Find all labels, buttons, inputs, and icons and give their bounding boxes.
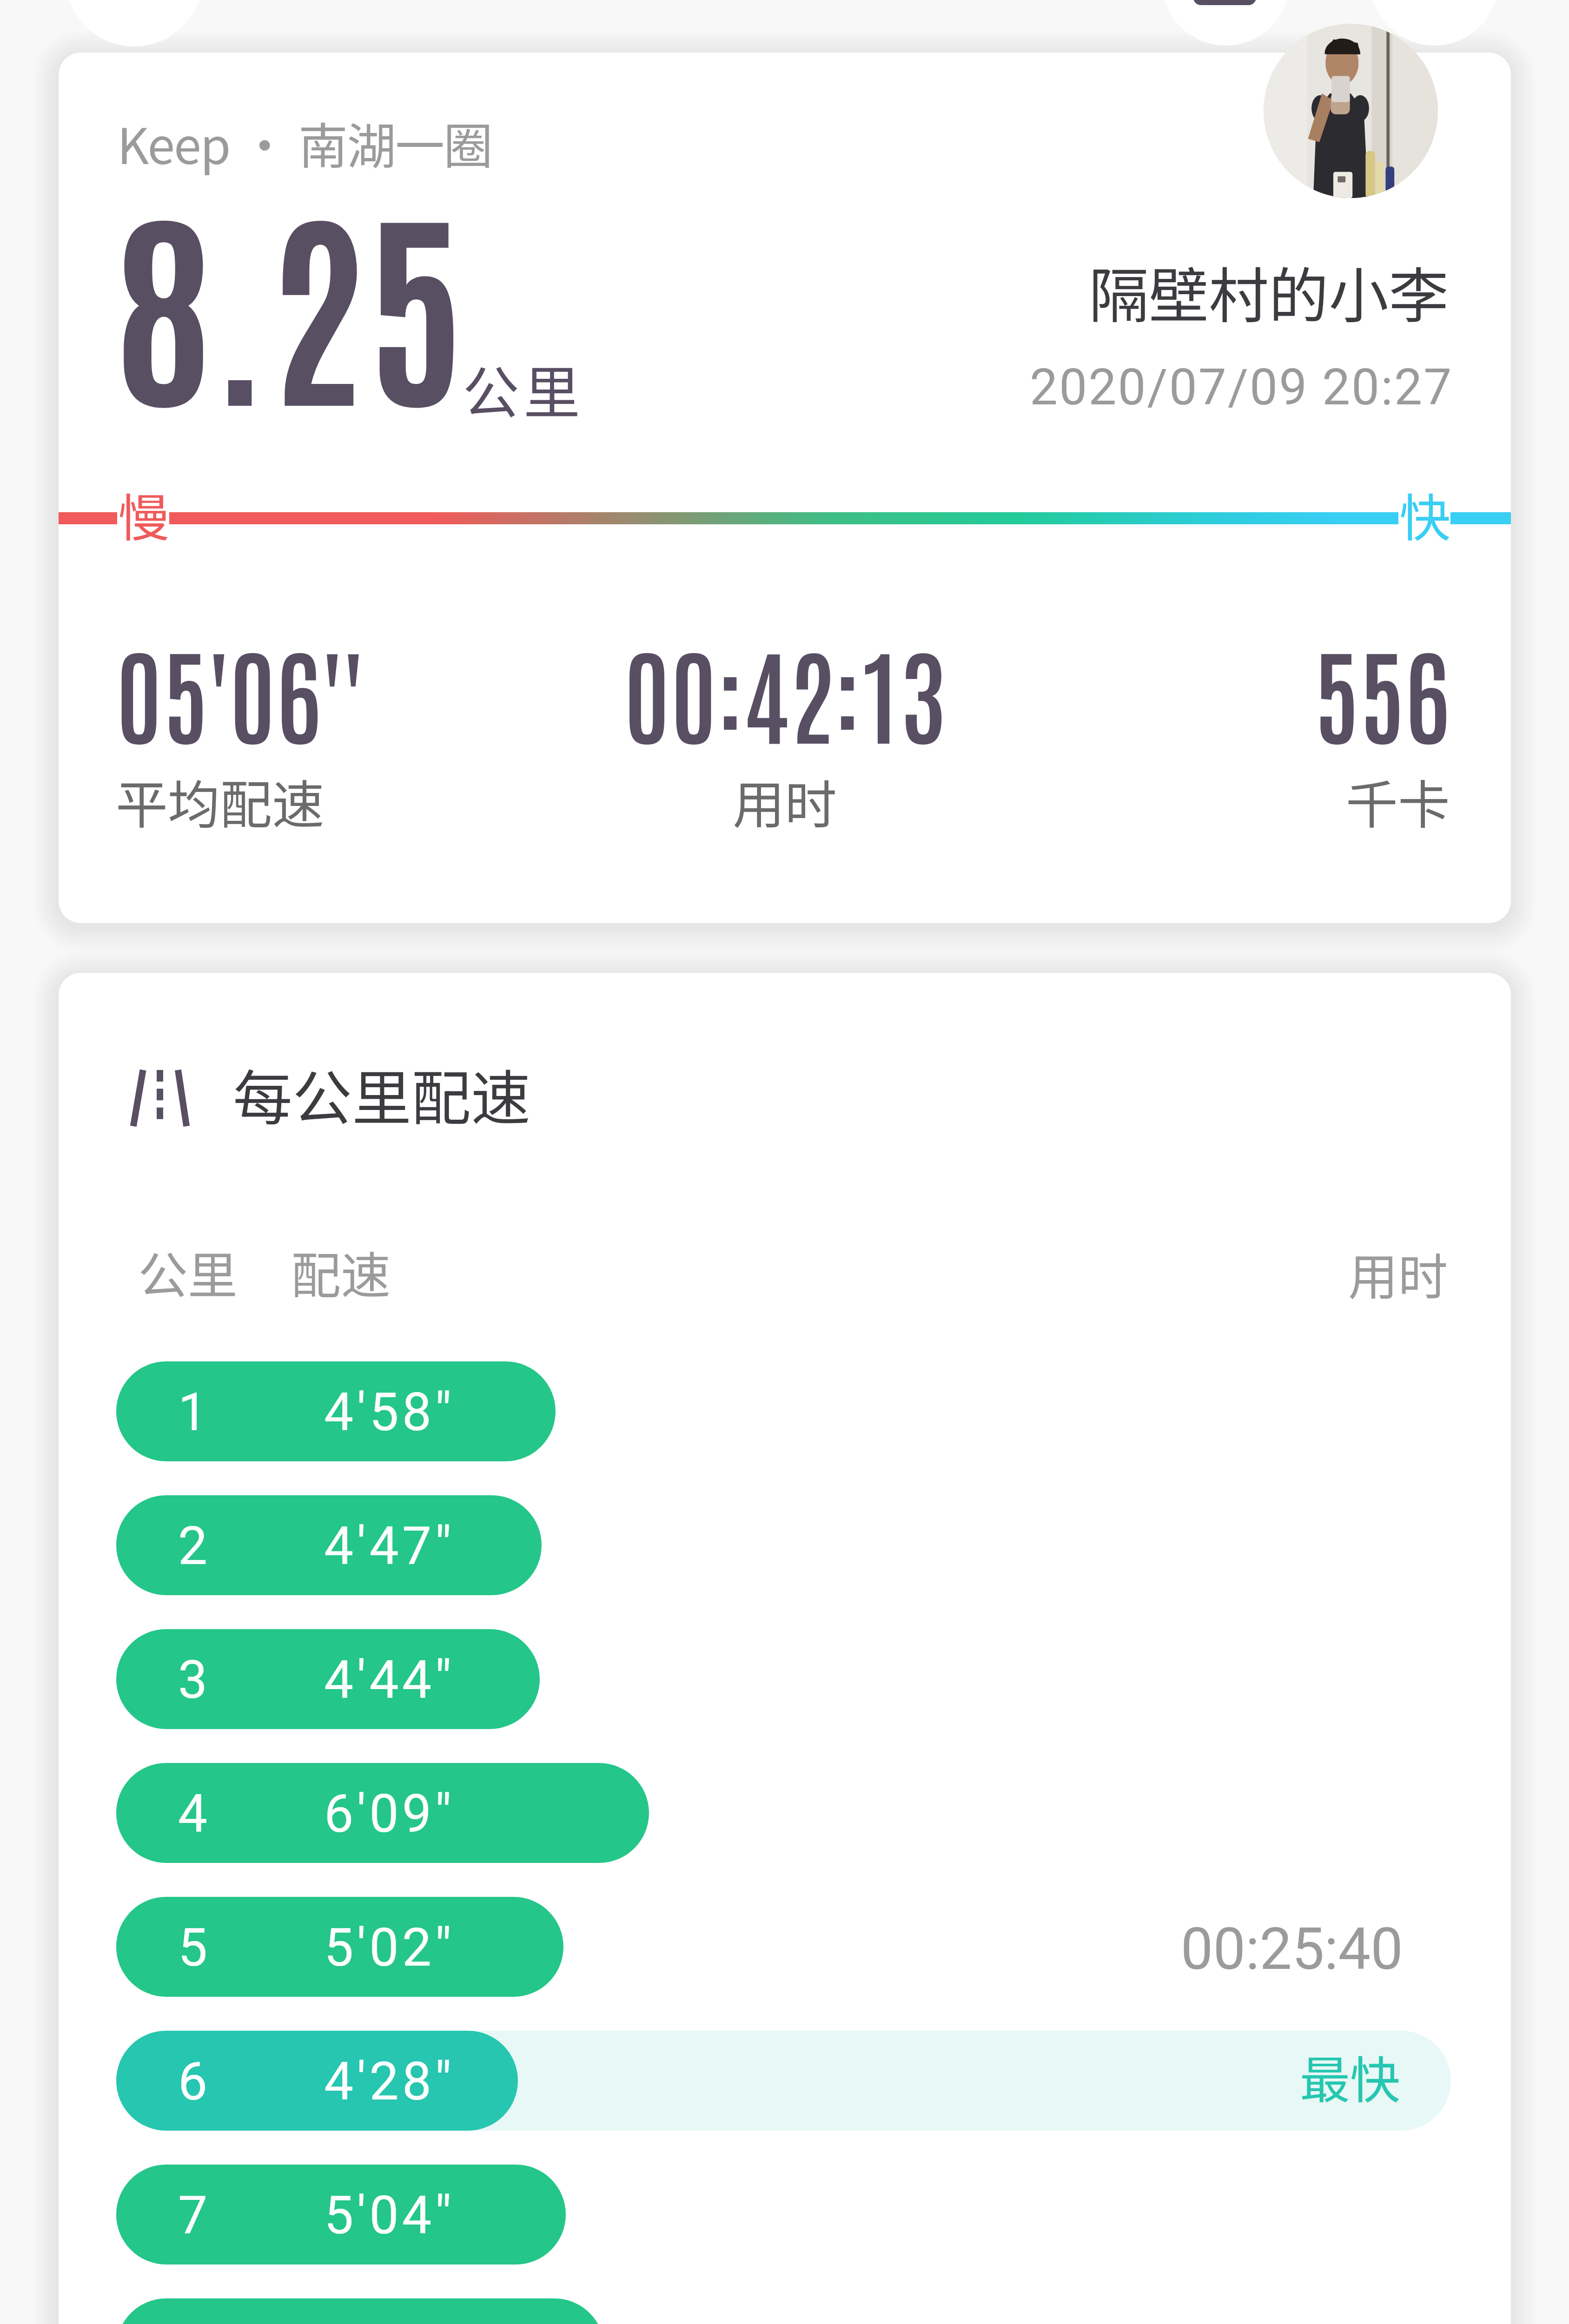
staticText: 2020/07/09 20:27 bbox=[1030, 358, 1453, 416]
staticText: 2 bbox=[162, 1515, 227, 1577]
staticText: 隔壁村的小李 bbox=[1089, 248, 1449, 335]
staticText: 用时 bbox=[59, 1237, 1448, 1309]
staticText: 6 bbox=[162, 2051, 227, 2112]
staticText: 5'04" bbox=[324, 2185, 455, 2246]
staticText: 4'47" bbox=[324, 1515, 455, 1577]
button[interactable]: Share bbox=[1370, 0, 1498, 46]
staticText: 4'44" bbox=[324, 1649, 455, 1710]
button[interactable] bbox=[116, 1629, 540, 1729]
button[interactable] bbox=[116, 1361, 556, 1461]
button[interactable]: Back bbox=[66, 0, 203, 46]
staticText: 5'02" bbox=[324, 1917, 455, 1978]
staticText: 4 bbox=[162, 1783, 227, 1844]
button[interactable]: More options bbox=[1162, 0, 1290, 46]
button[interactable] bbox=[116, 2165, 566, 2265]
staticText: 5 bbox=[162, 1917, 227, 1978]
staticText: 00:42:13 bbox=[59, 623, 1511, 758]
staticText: 7 bbox=[162, 2185, 227, 2246]
staticText: 平均配速 bbox=[116, 763, 324, 838]
staticText: 配速 bbox=[291, 1236, 391, 1308]
staticText: 每公里配速 bbox=[233, 1051, 531, 1137]
staticText: 用时 bbox=[59, 763, 1511, 838]
staticText: 6'09" bbox=[324, 1783, 455, 1844]
button[interactable]: Profile photo bbox=[1264, 24, 1438, 198]
button[interactable] bbox=[116, 1763, 649, 1863]
staticText: 1 bbox=[162, 1381, 227, 1443]
staticText: 快 bbox=[1399, 477, 1450, 551]
button[interactable] bbox=[116, 2298, 604, 2324]
staticText: 3 bbox=[162, 1649, 227, 1710]
button[interactable]: 每公里配速 bbox=[59, 973, 1511, 2324]
staticText: 05'06'' bbox=[116, 623, 364, 758]
staticText: Keep · 南湖一圈 bbox=[117, 107, 492, 178]
staticText: 4'58" bbox=[324, 1381, 455, 1443]
button[interactable]: Keep · 南湖一圈 bbox=[59, 53, 1511, 923]
staticText: 556 bbox=[59, 623, 1450, 758]
staticText: 慢 bbox=[118, 477, 169, 551]
staticText: 8.25 bbox=[114, 160, 466, 436]
staticText: 00:25:40 bbox=[59, 1915, 1403, 1983]
button[interactable] bbox=[116, 1897, 563, 1997]
staticText: 公里 bbox=[463, 347, 584, 429]
staticText: 公里 bbox=[138, 1236, 238, 1308]
staticText: 千卡 bbox=[59, 763, 1450, 838]
staticText: 4'28" bbox=[324, 2051, 455, 2112]
button[interactable] bbox=[116, 2031, 518, 2131]
staticText: 最快 bbox=[59, 2040, 1400, 2113]
button[interactable] bbox=[116, 1495, 542, 1595]
